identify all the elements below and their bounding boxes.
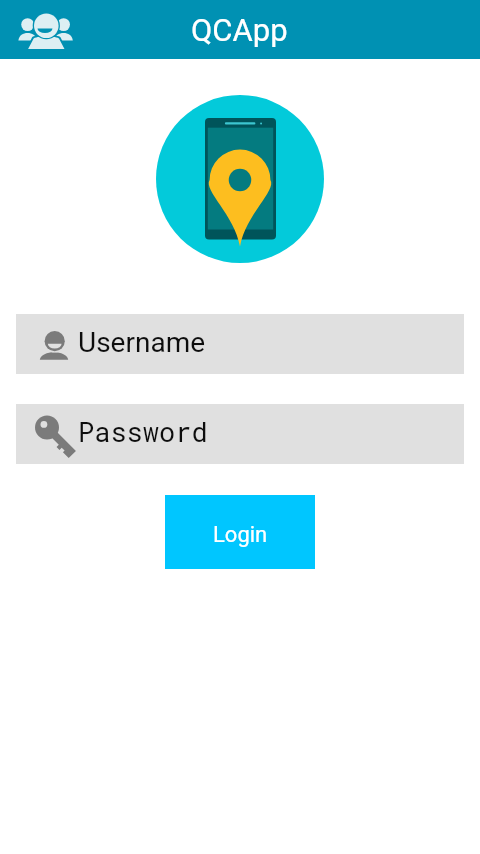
button[interactable]: Username bbox=[16, 314, 464, 374]
button[interactable]: Password bbox=[16, 404, 464, 464]
staticText: QCApp bbox=[191, 12, 288, 48]
button[interactable]: Users bbox=[0, 0, 84, 59]
staticText: Login bbox=[213, 522, 268, 548]
staticText: Username bbox=[78, 326, 206, 359]
button[interactable]: Login bbox=[165, 495, 315, 569]
staticText: Password bbox=[78, 414, 208, 450]
